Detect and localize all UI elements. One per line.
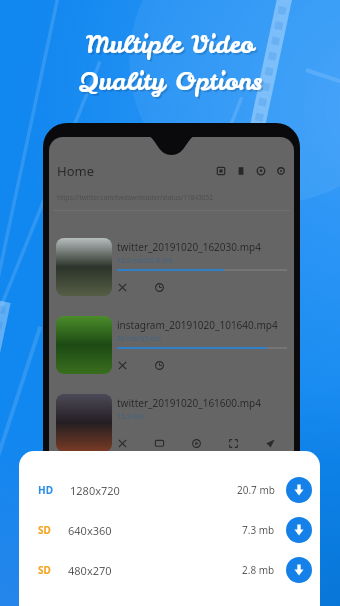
button[interactable]: Download 480x270 bbox=[286, 557, 312, 583]
button[interactable]: Bookmarks bbox=[237, 167, 245, 175]
button[interactable]: twitter_20191020_161600.mp4 bbox=[49, 394, 294, 472]
button[interactable]: Share bbox=[266, 439, 275, 448]
staticText: Home bbox=[57, 162, 94, 180]
button[interactable]: Pause bbox=[155, 361, 164, 370]
button[interactable]: Settings bbox=[277, 167, 285, 175]
staticText: HD bbox=[38, 483, 53, 497]
staticText: SD bbox=[38, 523, 51, 537]
button[interactable]: Download 640x360 bbox=[286, 517, 312, 543]
button[interactable]: HD bbox=[19, 477, 320, 503]
button[interactable]: Cancel bbox=[118, 283, 127, 292]
staticText: instagram_20191020_101640.mp4 bbox=[117, 318, 278, 332]
button[interactable]: Cancel bbox=[118, 361, 127, 370]
staticText: 20 mb/35 mb bbox=[117, 334, 161, 344]
staticText: Quality Options bbox=[79, 64, 262, 98]
staticText: 640x360 bbox=[68, 523, 112, 538]
button[interactable]: Downloads bbox=[217, 167, 225, 175]
staticText: 12.0 mb/20.4 mb bbox=[117, 256, 173, 266]
button[interactable]: twitter_20191020_162030.mp4 bbox=[49, 238, 294, 316]
button[interactable]: Cancel bbox=[118, 439, 127, 448]
staticText: SD bbox=[38, 563, 51, 577]
staticText: twitter_20191020_161600.mp4 bbox=[117, 396, 261, 410]
staticText: Quality Options bbox=[81, 66, 264, 100]
staticText: 20.7 mb bbox=[237, 483, 275, 497]
button[interactable]: Rename bbox=[229, 439, 238, 448]
staticText: Multiple Video bbox=[86, 27, 254, 61]
button[interactable]: instagram_20191020_101640.mp4 bbox=[49, 316, 294, 394]
staticText: twitter_20191020_162030.mp4 bbox=[117, 240, 261, 254]
staticText: 480x270 bbox=[68, 563, 112, 578]
button[interactable]: Download 1280x720 bbox=[286, 477, 312, 503]
staticText: 2.8 mb bbox=[242, 563, 275, 577]
staticText: 1280x720 bbox=[70, 483, 120, 498]
staticText: https://twitter.com/twdownloader/status/… bbox=[57, 193, 213, 202]
button[interactable]: Pause bbox=[155, 283, 164, 292]
button[interactable]: Play bbox=[192, 439, 201, 448]
button[interactable]: https://twitter.com/twdownloader/status/… bbox=[55, 184, 288, 210]
staticText: Multiple Video bbox=[88, 29, 256, 63]
button[interactable]: SD bbox=[19, 517, 320, 543]
staticText: 7.3 mb bbox=[242, 523, 275, 537]
button[interactable]: SD bbox=[19, 557, 320, 583]
button[interactable]: Help bbox=[257, 167, 265, 175]
button[interactable]: Open folder bbox=[155, 439, 164, 448]
staticText: 15.3 mb bbox=[117, 412, 144, 422]
